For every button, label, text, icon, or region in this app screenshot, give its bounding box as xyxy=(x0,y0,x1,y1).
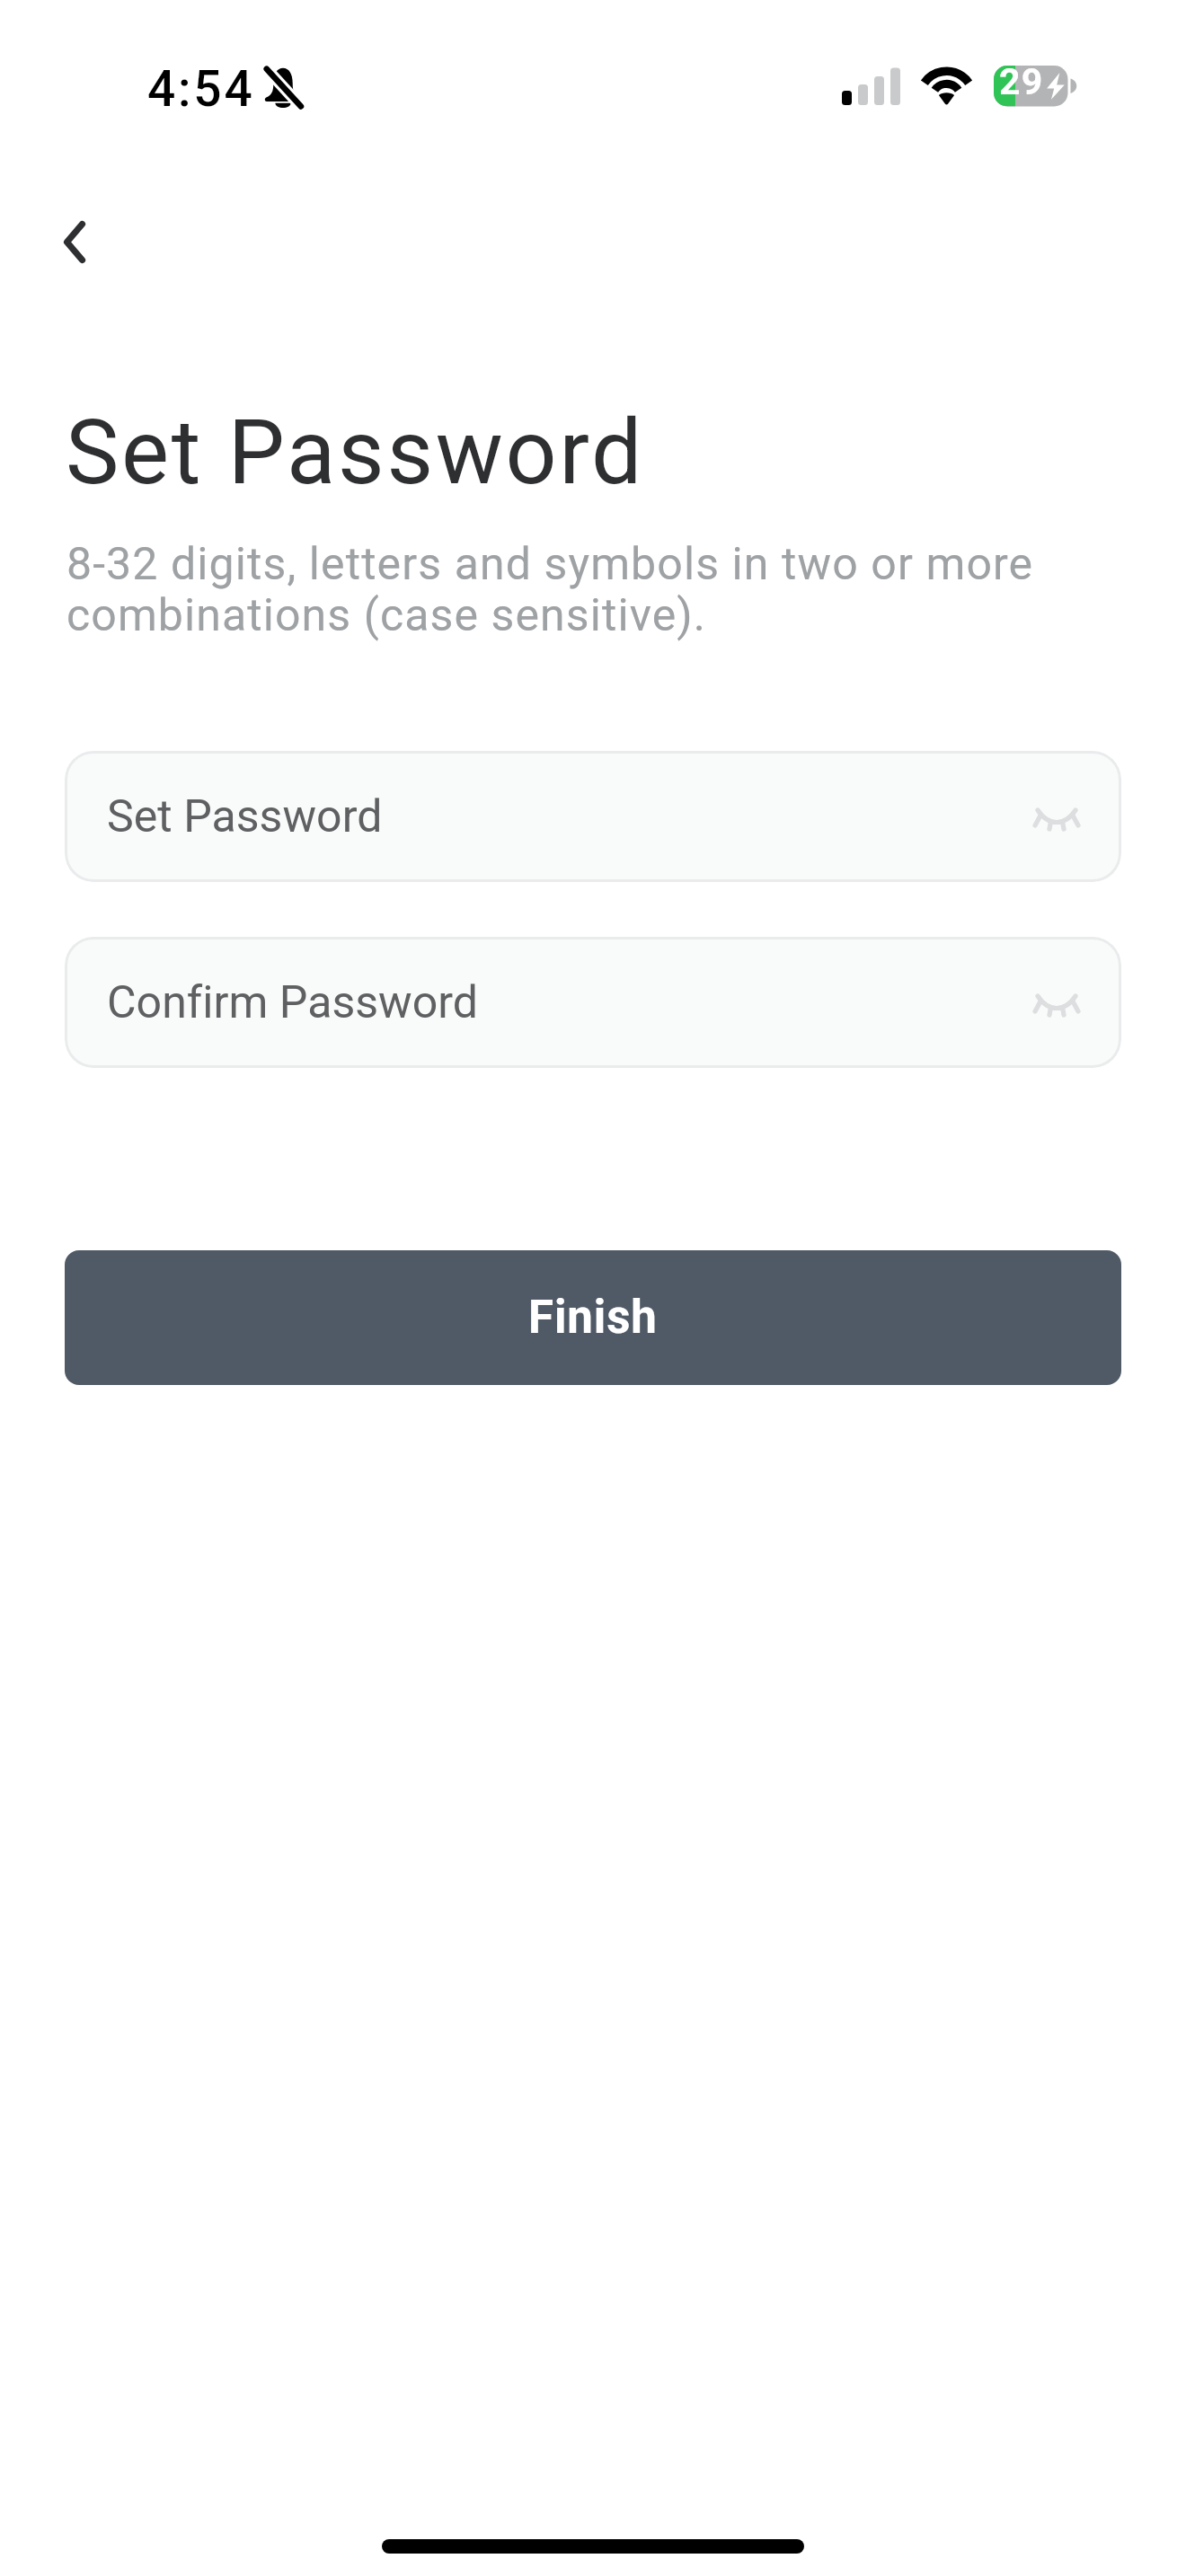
staticText: Finish xyxy=(528,1291,658,1345)
button[interactable]: Set Password xyxy=(65,751,1121,882)
staticText: Set Password xyxy=(107,790,383,843)
staticText: 29 xyxy=(999,60,1044,101)
button[interactable]: Show password xyxy=(1028,974,1085,1031)
staticText: 4:54 xyxy=(147,60,255,118)
button[interactable]: Confirm Password xyxy=(65,937,1121,1068)
button[interactable]: Back xyxy=(35,202,114,281)
staticText: Set Password xyxy=(66,400,645,505)
button[interactable]: Finish xyxy=(65,1250,1121,1385)
staticText: 8-32 digits, letters and symbols in two … xyxy=(66,538,1121,641)
button[interactable]: Show password xyxy=(1028,788,1085,845)
staticText: Confirm Password xyxy=(107,976,479,1029)
